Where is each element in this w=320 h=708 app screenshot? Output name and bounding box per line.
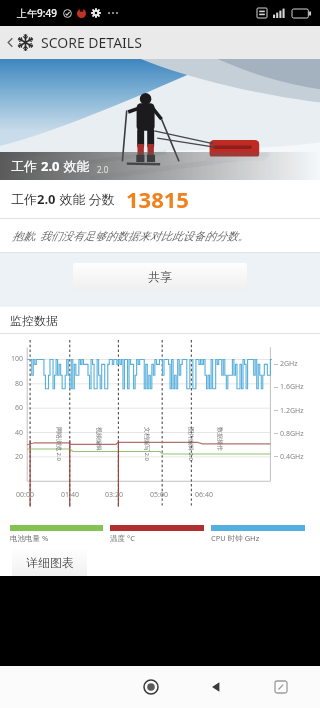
staticText: 40 [0,428,23,438]
staticText: 0.8GHz [280,429,304,439]
staticText: CPU 时钟 GHz [211,533,260,543]
staticText: 工作 [11,191,37,207]
staticText: 0.4GHz [280,452,304,462]
staticText: 工作 [11,157,41,175]
staticText: 温度 °C [110,533,135,543]
staticText: 03:20 [105,490,123,500]
staticText: 效能 分数 [56,190,115,208]
staticText: 100 [0,354,23,364]
staticText: 05:00 [150,490,168,500]
button[interactable]: Back [0,26,320,59]
button[interactable]: Home [132,668,170,706]
staticText: 1.6GHz [280,382,304,392]
staticText: 电池电量 % [10,533,49,543]
staticText: 1.2GHz [280,406,304,416]
staticText: 2.0 [37,190,56,208]
button[interactable]: Recents [262,668,300,706]
staticText: 网络浏览 2.0 [55,427,63,462]
staticText: 视频编辑 [95,427,103,451]
staticText: 详细图表 [26,555,74,570]
staticText: 2.0 [97,164,109,175]
staticText: 上午9:49 [17,6,57,20]
staticText: 文档编写 2.0 [143,427,151,462]
staticText: 效能 [60,157,90,175]
staticText: 60 [0,403,23,413]
button[interactable]: 共享 [73,263,247,290]
button[interactable]: 详细图表 [12,549,87,576]
staticText: 80 [0,379,23,389]
staticText: 00:00 [16,490,34,500]
staticText: 01:40 [61,490,79,500]
staticText: 2.0 [41,157,60,175]
staticText: 图片编辑 2.0 [187,427,195,462]
other: Back [4,36,17,49]
button[interactable]: Back [197,668,235,706]
staticText: 监控数据 [10,313,58,328]
staticText: 抱歉, 我们没有足够的数据来对比此设备的分数。 [12,228,249,243]
staticText: 06:40 [195,490,213,500]
staticText: 共享 [148,269,172,284]
staticText: 数据操作 [216,427,224,451]
staticText: SCORE DETAILS [41,33,142,52]
staticText: 13815 [126,184,189,214]
staticText: 20 [0,452,23,462]
staticText: 2GHz [280,359,298,369]
